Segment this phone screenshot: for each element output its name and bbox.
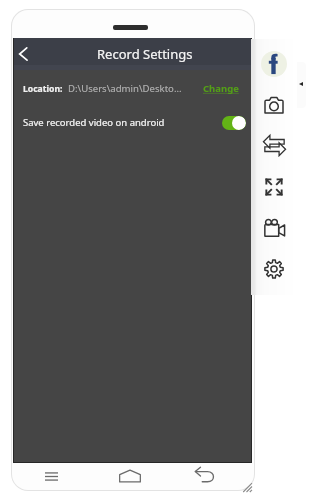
button[interactable]: Take photo: [251, 84, 297, 125]
button[interactable]: Record video: [251, 207, 297, 248]
staticText: Location:: [23, 83, 63, 95]
button[interactable]: Settings: [251, 248, 297, 289]
button[interactable]: Home: [93, 462, 167, 490]
button[interactable]: Location:: [14, 70, 251, 107]
staticText: Change: [203, 82, 239, 95]
button[interactable]: Save recorded video on android toggle: [222, 116, 246, 130]
staticText: Record Settings: [97, 45, 193, 63]
button[interactable]: Back: [167, 462, 241, 490]
button[interactable]: Back: [14, 42, 38, 66]
button[interactable]: Menu: [14, 462, 88, 490]
button[interactable]: Switch camera: [251, 125, 297, 166]
button[interactable]: Change: [203, 82, 239, 95]
button[interactable]: Collapse panel: [292, 62, 306, 108]
button[interactable]: Save recorded video on android: [14, 107, 251, 138]
button[interactable]: Facebook: [251, 43, 297, 84]
staticText: D:\Users\admin\Deskto...: [68, 82, 182, 95]
button[interactable]: Fullscreen: [251, 166, 297, 207]
staticText: Save recorded video on android: [23, 116, 165, 129]
